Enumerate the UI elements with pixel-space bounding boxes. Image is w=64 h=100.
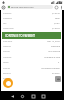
staticText: 3 bbox=[58, 61, 60, 64]
staticText: UPS Ground bbox=[48, 50, 60, 53]
staticText: secure.checkout.com bbox=[11, 6, 34, 9]
button[interactable]: Items bbox=[1, 60, 62, 65]
staticText: Order total bbox=[3, 27, 14, 30]
button[interactable]: Returns bbox=[1, 71, 62, 76]
staticText: Available at ship bbox=[44, 56, 60, 59]
staticText: $138.03 bbox=[52, 27, 60, 30]
button[interactable]: Chat with us bbox=[3, 78, 13, 88]
button[interactable]: Tax bbox=[1, 21, 62, 26]
button[interactable]: Carrier bbox=[1, 49, 62, 54]
staticText: Northwind Trading bbox=[41, 67, 60, 70]
staticText: Chat bbox=[55, 77, 60, 80]
staticText: Mar 12, 2024 bbox=[47, 40, 60, 43]
staticText: Shipping bbox=[3, 17, 12, 20]
button[interactable]: Order total bbox=[1, 26, 62, 31]
button[interactable]: Tracking bbox=[1, 54, 62, 60]
staticText: CONTINUE TO PAYMENT bbox=[5, 34, 35, 38]
button[interactable]: Sold by bbox=[1, 65, 62, 71]
staticText: FREE bbox=[55, 17, 60, 20]
staticText: $128.40 bbox=[52, 12, 60, 15]
staticText: Tax bbox=[3, 22, 7, 25]
staticText: Support bbox=[3, 77, 11, 80]
staticText: 30 days bbox=[52, 72, 60, 75]
staticText: Carrier bbox=[3, 50, 10, 53]
button[interactable]: Ship date bbox=[1, 39, 62, 44]
button[interactable]: Method bbox=[1, 44, 62, 49]
button[interactable]: Subtotal bbox=[1, 11, 62, 16]
button[interactable]: Back bbox=[1, 5, 6, 10]
button[interactable]: Rotate screen bbox=[39, 92, 47, 100]
button[interactable]: secure.checkout.com bbox=[7, 5, 53, 9]
button[interactable]: Help bbox=[55, 76, 61, 82]
staticText: Items bbox=[3, 61, 9, 64]
button[interactable]: Home bbox=[18, 92, 26, 100]
staticText: Standard bbox=[51, 45, 60, 48]
staticText: Returns bbox=[3, 72, 11, 75]
button[interactable]: Back bbox=[8, 92, 16, 100]
button[interactable]: Recent apps bbox=[29, 92, 37, 100]
staticText: Method bbox=[3, 45, 11, 48]
staticText: Ship date bbox=[3, 40, 13, 43]
staticText: $9.63 bbox=[54, 22, 60, 25]
staticText: Sold by bbox=[3, 67, 11, 70]
button[interactable]: Shipping bbox=[1, 16, 62, 21]
button[interactable]: CONTINUE TO PAYMENT bbox=[2, 32, 61, 39]
staticText: Tracking bbox=[3, 56, 12, 59]
button[interactable]: More options bbox=[59, 5, 63, 9]
button[interactable]: Support bbox=[1, 76, 62, 81]
staticText: Subtotal bbox=[3, 12, 12, 15]
button[interactable]: Reload bbox=[54, 5, 59, 10]
